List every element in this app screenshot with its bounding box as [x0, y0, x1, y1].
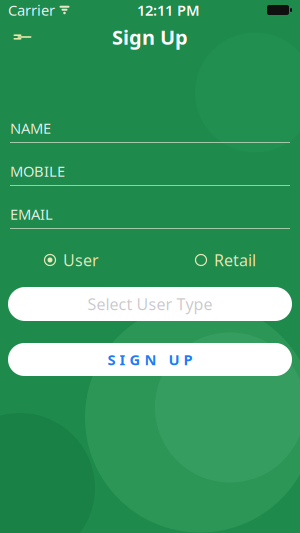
staticText: Select User Type: [87, 293, 212, 315]
staticText: NAME: [10, 118, 51, 138]
staticText: MOBILE: [10, 161, 65, 181]
staticText: Carrier: [8, 0, 55, 20]
staticText: EMAIL: [10, 204, 53, 224]
staticText: User: [63, 249, 99, 271]
staticText: Retail: [214, 249, 256, 271]
staticText: Sign Up: [112, 24, 188, 50]
button[interactable]: S I G N U P: [8, 343, 292, 376]
staticText: 12:11 PM: [137, 0, 200, 20]
staticText: S I G N U P: [107, 350, 192, 369]
button[interactable]: Select User Type: [8, 287, 292, 321]
button[interactable]: Back: [0, 20, 44, 54]
button[interactable]: User: [44, 245, 99, 275]
button[interactable]: Retail: [195, 245, 256, 275]
